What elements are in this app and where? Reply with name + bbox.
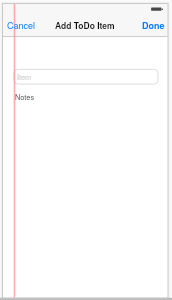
staticText: Cancel [7, 19, 36, 32]
staticText: Done [142, 19, 165, 32]
button[interactable]: Cancel [3, 18, 39, 33]
staticText: Item [17, 72, 32, 83]
button[interactable]: Item [14, 70, 158, 85]
staticText: Notes [15, 92, 35, 103]
button[interactable]: Done [137, 18, 165, 33]
staticText: Add ToDo Item [55, 19, 115, 31]
